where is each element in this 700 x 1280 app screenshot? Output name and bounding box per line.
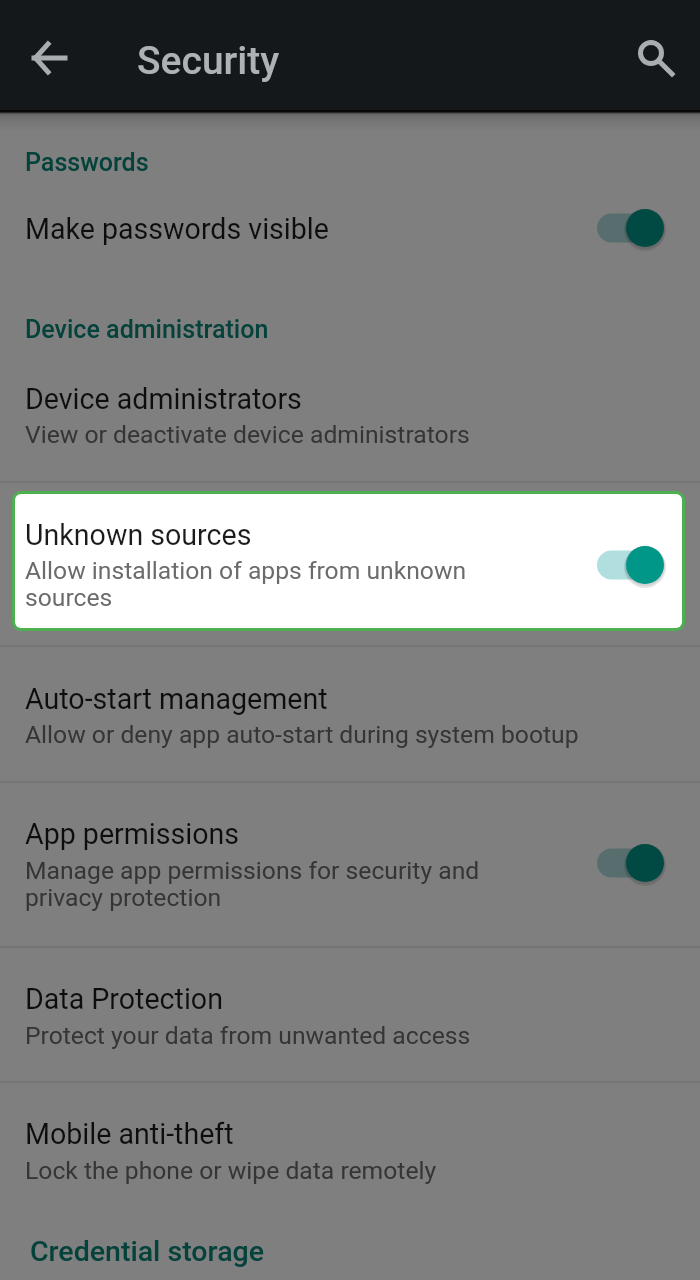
button[interactable]: Back xyxy=(18,26,82,90)
staticText: Protect your data from unwanted access xyxy=(25,1021,471,1050)
button[interactable]: Search xyxy=(619,21,683,85)
button[interactable]: Toggle xyxy=(590,835,670,891)
staticText: Security xyxy=(137,38,280,84)
staticText: Make passwords visible xyxy=(25,212,329,246)
staticText: Unknown sources xyxy=(25,518,252,552)
button[interactable]: Toggle xyxy=(590,200,670,256)
staticText: Credential storage xyxy=(30,1235,265,1268)
staticText: Device administrators xyxy=(25,382,302,416)
staticText: Passwords xyxy=(25,148,149,177)
staticText: Data Protection xyxy=(25,982,223,1016)
staticText: Device administration xyxy=(25,315,269,344)
staticText: Allow or deny app auto-start during syst… xyxy=(25,720,579,749)
staticText: Auto-start management xyxy=(25,682,328,716)
staticText: Lock the phone or wipe data remotely xyxy=(25,1156,437,1185)
staticText: Manage app permissions for security and … xyxy=(25,856,545,912)
staticText: Allow installation of apps from unknown … xyxy=(25,556,525,612)
staticText: Mobile anti-theft xyxy=(25,1117,234,1151)
staticText: App permissions xyxy=(25,817,240,851)
button[interactable]: Toggle xyxy=(590,537,670,593)
staticText: View or deactivate device administrators xyxy=(25,420,470,449)
button[interactable] xyxy=(15,494,682,628)
